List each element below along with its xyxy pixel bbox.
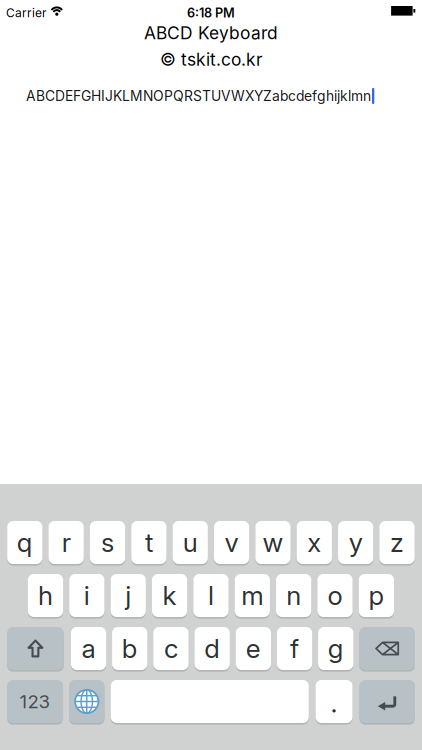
staticText: p [368, 580, 384, 611]
staticText: m [241, 580, 263, 611]
button[interactable]: a [71, 627, 106, 670]
button[interactable]: d [194, 627, 230, 670]
staticText: o [327, 580, 342, 611]
button[interactable]: c [153, 627, 189, 670]
staticText: k [163, 580, 177, 611]
button[interactable]: h [28, 574, 63, 617]
staticText: s [101, 527, 114, 558]
staticText: © tskit.co.kr [160, 49, 263, 70]
button[interactable]: g [318, 627, 353, 670]
staticText: r [62, 527, 71, 558]
staticText: w [262, 527, 283, 558]
staticText: g [328, 633, 344, 664]
button[interactable]: w [255, 521, 291, 564]
button[interactable]: y [338, 521, 373, 564]
staticText: a [82, 633, 96, 664]
staticText: q [17, 527, 33, 558]
button[interactable]: Next keyboard [69, 680, 104, 723]
staticText: d [204, 633, 220, 664]
button[interactable]: k [152, 574, 187, 617]
staticText: ABCDEFGHIJKLMNOPQRSTUVWXYZabcdefghijklmn [26, 88, 371, 104]
button[interactable]: Delete [359, 627, 415, 670]
staticText: z [390, 527, 404, 558]
button[interactable]: t [131, 521, 166, 564]
staticText: Carrier [6, 6, 47, 20]
staticText: h [38, 580, 53, 611]
button[interactable]: m [235, 574, 270, 617]
button[interactable]: 123 [7, 680, 63, 723]
staticText: l [208, 580, 214, 611]
staticText: 123 [20, 690, 51, 713]
button[interactable]: v [214, 521, 249, 564]
button[interactable]: u [173, 521, 208, 564]
staticText: x [307, 527, 321, 558]
staticText: e [246, 633, 261, 664]
staticText: . [331, 687, 338, 719]
staticText: c [164, 633, 178, 664]
button[interactable]: s [90, 521, 125, 564]
staticText: n [286, 580, 301, 611]
staticText: y [349, 527, 363, 558]
button[interactable]: p [359, 574, 394, 617]
staticText: i [84, 580, 90, 611]
button[interactable]: x [297, 521, 332, 564]
staticText: 6:18 PM [187, 5, 235, 21]
staticText: ABCD Keyboard [144, 22, 278, 43]
button[interactable]: f [277, 627, 312, 670]
button[interactable]: Text field [26, 86, 422, 106]
button[interactable]: e [236, 627, 271, 670]
staticText: f [290, 633, 299, 664]
staticText: v [225, 527, 239, 558]
staticText: b [122, 633, 138, 664]
button[interactable]: z [379, 521, 415, 564]
button[interactable]: q [7, 521, 42, 564]
button[interactable]: b [112, 627, 147, 670]
button[interactable]: o [317, 574, 353, 617]
staticText: t [145, 527, 153, 558]
staticText: j [125, 580, 131, 611]
button[interactable]: l [193, 574, 228, 617]
button[interactable]: space [111, 680, 309, 723]
button[interactable]: i [69, 574, 104, 617]
button[interactable]: n [276, 574, 311, 617]
button[interactable]: Return [359, 680, 415, 723]
button[interactable]: Shift [7, 627, 64, 670]
staticText: u [183, 527, 198, 558]
button[interactable]: . [316, 680, 352, 723]
button[interactable]: j [111, 574, 146, 617]
button[interactable]: r [49, 521, 84, 564]
